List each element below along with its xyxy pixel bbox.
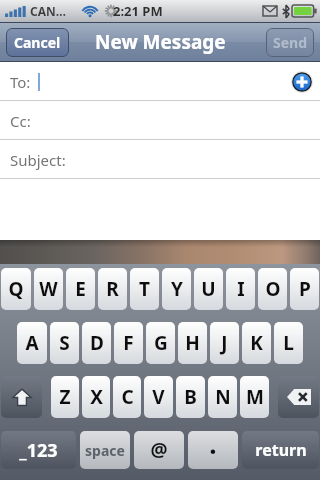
staticText: Cc: <box>10 111 31 131</box>
staticText: N <box>215 384 231 410</box>
button[interactable]: Q <box>1 268 31 310</box>
staticText: B <box>184 384 197 410</box>
button[interactable]: X <box>82 376 110 418</box>
staticText: O <box>265 276 281 302</box>
button[interactable]: return <box>242 431 319 469</box>
staticText: M <box>246 384 264 410</box>
button[interactable]: Add recipient <box>290 70 314 94</box>
staticText: X <box>90 384 103 410</box>
staticText: CAN… <box>30 3 67 19</box>
button[interactable]: N <box>208 376 237 418</box>
staticText: _123 <box>19 438 58 463</box>
button[interactable]: S <box>50 322 79 364</box>
button[interactable]: Send <box>266 28 314 57</box>
button[interactable]: M <box>240 376 269 418</box>
button[interactable]: Y <box>162 268 191 310</box>
staticText: S <box>59 330 70 356</box>
staticText: U <box>201 276 216 302</box>
staticText: return <box>255 439 307 461</box>
staticText: C <box>121 384 134 410</box>
button[interactable]: K <box>242 322 271 364</box>
button[interactable]: T <box>130 268 159 310</box>
button[interactable]: D <box>82 322 111 364</box>
button[interactable]: H <box>178 322 207 364</box>
staticText: space <box>85 441 125 460</box>
staticText: T <box>139 276 150 302</box>
staticText: R <box>106 276 119 302</box>
button[interactable]: J <box>210 322 239 364</box>
staticText: L <box>283 330 294 356</box>
staticText: H <box>185 330 200 356</box>
button[interactable]: R <box>98 268 127 310</box>
staticText: Send <box>273 33 308 52</box>
staticText: Cancel <box>14 33 61 52</box>
staticText: A <box>25 330 39 356</box>
button[interactable]: Delete <box>278 376 319 418</box>
staticText: G <box>154 330 168 356</box>
button[interactable]: A <box>17 322 47 364</box>
button[interactable]: F <box>114 322 143 364</box>
staticText: Z <box>59 384 71 410</box>
staticText: J <box>221 330 228 356</box>
staticText: · <box>209 433 217 468</box>
button[interactable]: G <box>146 322 175 364</box>
staticText: To: <box>10 72 31 92</box>
button[interactable]: W <box>34 268 63 310</box>
staticText: Subject: <box>10 150 66 170</box>
button[interactable]: @ <box>134 431 184 469</box>
button[interactable]: L <box>274 322 303 364</box>
button[interactable]: U <box>194 268 223 310</box>
staticText: I <box>237 276 245 302</box>
button[interactable]: B <box>176 376 205 418</box>
staticText: W <box>39 276 58 302</box>
staticText: Y <box>171 276 183 302</box>
button[interactable]: _123 <box>1 431 76 469</box>
button[interactable]: space <box>80 431 130 469</box>
button[interactable]: Z <box>51 376 79 418</box>
staticText: @ <box>150 437 168 463</box>
staticText: E <box>75 276 86 302</box>
staticText: K <box>250 330 263 356</box>
button[interactable]: · <box>188 431 238 469</box>
button[interactable]: P <box>290 268 319 310</box>
button[interactable]: Shift <box>1 376 42 418</box>
staticText: P <box>299 276 311 302</box>
button[interactable]: I <box>226 268 255 310</box>
button[interactable]: Cancel <box>6 28 69 57</box>
staticText: Q <box>8 276 24 302</box>
button[interactable]: C <box>113 376 141 418</box>
button[interactable]: E <box>66 268 95 310</box>
button[interactable]: O <box>258 268 287 310</box>
staticText: V <box>152 384 165 410</box>
button[interactable]: V <box>144 376 173 418</box>
staticText: D <box>90 330 104 356</box>
staticText: F <box>123 330 134 356</box>
staticText: New Message <box>95 29 226 55</box>
staticText: 2:21 PM <box>113 2 163 20</box>
